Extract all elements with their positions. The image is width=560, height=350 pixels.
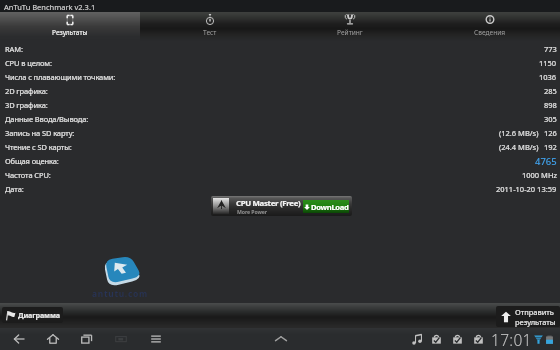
button[interactable]: Общая оценка: [0, 154, 560, 168]
button[interactable]: Диаграмма [5, 307, 60, 323]
button[interactable]: Отправить [500, 306, 556, 327]
button[interactable]: Back [2, 328, 36, 350]
button[interactable]: Результаты [0, 12, 140, 41]
staticText: Дата: [5, 184, 24, 194]
staticText: 4765 [535, 155, 557, 168]
button[interactable]: Частота CPU: [0, 168, 560, 182]
staticText: 898 [544, 100, 557, 110]
staticText: Общая оценка: [5, 156, 59, 166]
staticText: Рейтинг [337, 28, 363, 37]
button[interactable]: Рейтинг [280, 12, 420, 41]
staticText: More Power [237, 208, 268, 215]
staticText: (24.4 MB/s) [499, 142, 539, 152]
staticText: Данные Ввода/Вывода: [5, 114, 89, 124]
staticText: DownLoad [311, 202, 349, 212]
button[interactable]: Тест [140, 12, 280, 41]
staticText: Числа с плавающими точками: [5, 72, 116, 82]
staticText: 2D графика: [5, 86, 48, 96]
staticText: Сведения [474, 28, 506, 37]
staticText: 773 [544, 44, 557, 54]
button[interactable]: Данные Ввода/Вывода: [0, 112, 560, 126]
staticText: Отправить [515, 307, 554, 317]
staticText: (12.6 MB/s) [499, 128, 539, 138]
button[interactable]: RAM: [0, 42, 560, 56]
staticText: AnTuTu Benchmark v2.3.1 [4, 2, 96, 12]
button[interactable]: Home [36, 328, 70, 350]
staticText: Результаты [52, 28, 88, 37]
button[interactable]: Recents [70, 328, 104, 350]
staticText: Частота CPU: [5, 170, 51, 180]
staticText: результаты [515, 317, 556, 327]
staticText: 305 [544, 114, 557, 124]
button[interactable]: DownLoad [303, 200, 349, 213]
staticText: Запись на SD карту: [5, 128, 75, 138]
staticText: RAM: [5, 44, 23, 54]
button[interactable]: CPU в целом: [0, 56, 560, 70]
button[interactable]: Screenshot [104, 328, 138, 350]
staticText: 17:01 [491, 329, 532, 350]
staticText: Тест [203, 28, 217, 37]
staticText: 126 [544, 128, 557, 138]
button[interactable]: CPU Master (Free) [211, 196, 352, 216]
button[interactable]: Menu [139, 328, 173, 350]
button[interactable]: Дата: [0, 182, 560, 196]
button[interactable]: Music playing [412, 334, 423, 345]
button[interactable]: 3D графика: [0, 98, 560, 112]
staticText: antutu.com [92, 288, 148, 299]
staticText: Чтение с SD карты: [5, 142, 72, 152]
button[interactable]: Числа с плавающими точками: [0, 70, 560, 84]
staticText: 1150 [539, 58, 557, 68]
staticText: 1000 MHz [522, 170, 557, 180]
staticText: CPU Master (Free) [236, 198, 301, 209]
staticText: 285 [544, 86, 557, 96]
button[interactable]: Сведения [420, 12, 560, 41]
staticText: 192 [544, 142, 557, 152]
staticText: CPU в целом: [5, 58, 52, 68]
staticText: 1036 [539, 72, 557, 82]
button[interactable]: Запись на SD карту: [0, 126, 560, 140]
staticText: 3D графика: [5, 100, 48, 110]
staticText: 2011-10-20 13:59 [496, 184, 557, 194]
button[interactable]: Expand [273, 331, 289, 347]
button[interactable]: Чтение с SD карты: [0, 140, 560, 154]
button[interactable]: 2D графика: [0, 84, 560, 98]
staticText: Диаграмма [18, 310, 60, 320]
